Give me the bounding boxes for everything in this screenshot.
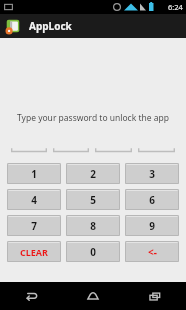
button[interactable]: 2 xyxy=(66,163,120,184)
button[interactable]: Password digit field xyxy=(53,140,89,153)
staticText: 3 xyxy=(149,167,155,181)
staticText: 6 xyxy=(149,193,155,207)
button[interactable]: 7 xyxy=(7,215,61,236)
staticText: 1 xyxy=(31,167,37,181)
button[interactable]: CLEAR xyxy=(7,241,61,262)
button[interactable]: 9 xyxy=(125,215,179,236)
staticText: 2 xyxy=(90,167,96,181)
button[interactable]: 6 xyxy=(125,189,179,210)
staticText: 8 xyxy=(90,219,96,233)
button[interactable]: 4 xyxy=(7,189,61,210)
button[interactable]: 8 xyxy=(66,215,120,236)
staticText: 0 xyxy=(90,245,96,259)
staticText: 9 xyxy=(149,219,155,233)
button[interactable]: 3 xyxy=(125,163,179,184)
staticText: 4 xyxy=(31,193,37,207)
staticText: CLEAR xyxy=(20,246,48,258)
button[interactable]: 1 xyxy=(7,163,61,184)
staticText: 7 xyxy=(31,219,37,233)
button[interactable]: 5 xyxy=(66,189,120,210)
button[interactable]: Back xyxy=(0,282,62,310)
staticText: Type your password to unlock the app xyxy=(17,112,169,124)
button[interactable]: Password digit field xyxy=(95,140,132,153)
staticText: 6:24 xyxy=(168,2,183,12)
staticText: AppLock xyxy=(29,19,72,33)
button[interactable]: Backspace xyxy=(125,241,179,262)
button[interactable]: Password digit field xyxy=(11,140,47,153)
staticText: 5 xyxy=(90,193,96,207)
button[interactable]: 0 xyxy=(66,241,120,262)
button[interactable]: Password digit field xyxy=(138,140,175,153)
button[interactable]: Recent apps xyxy=(124,282,186,310)
staticText: <- xyxy=(148,245,157,259)
button[interactable]: Home xyxy=(62,282,124,310)
